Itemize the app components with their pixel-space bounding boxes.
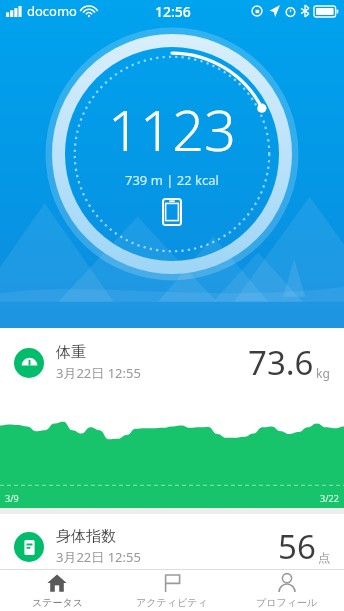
button[interactable]: 身体指数 xyxy=(0,514,344,569)
staticText: 56 xyxy=(278,524,316,569)
staticText: 体重 xyxy=(56,343,86,362)
button[interactable]: 3/9 xyxy=(0,395,344,508)
staticText: アクティビティ xyxy=(136,596,208,609)
button[interactable]: 体重 xyxy=(0,328,344,395)
staticText: kg xyxy=(316,365,330,381)
staticText: 3/9 xyxy=(5,492,19,504)
button[interactable]: アクティビティ xyxy=(114,570,229,611)
staticText: 点 xyxy=(318,550,330,565)
staticText: 739 m | 22 kcal xyxy=(125,171,219,189)
staticText: 3/22 xyxy=(320,492,339,504)
staticText: docomo xyxy=(27,2,77,20)
staticText: 12:56 xyxy=(155,2,191,21)
staticText: 3月22日 12:55 xyxy=(56,548,141,566)
staticText: ステータス xyxy=(32,596,83,609)
staticText: プロフィール xyxy=(256,596,318,609)
button[interactable]: ステータス xyxy=(0,570,114,611)
staticText: 3月22日 12:55 xyxy=(56,364,141,382)
staticText: 73.6 xyxy=(248,340,314,385)
button[interactable]: プロフィール xyxy=(229,570,344,611)
staticText: 身体指数 xyxy=(56,527,116,546)
staticText: 1123 xyxy=(108,91,236,167)
